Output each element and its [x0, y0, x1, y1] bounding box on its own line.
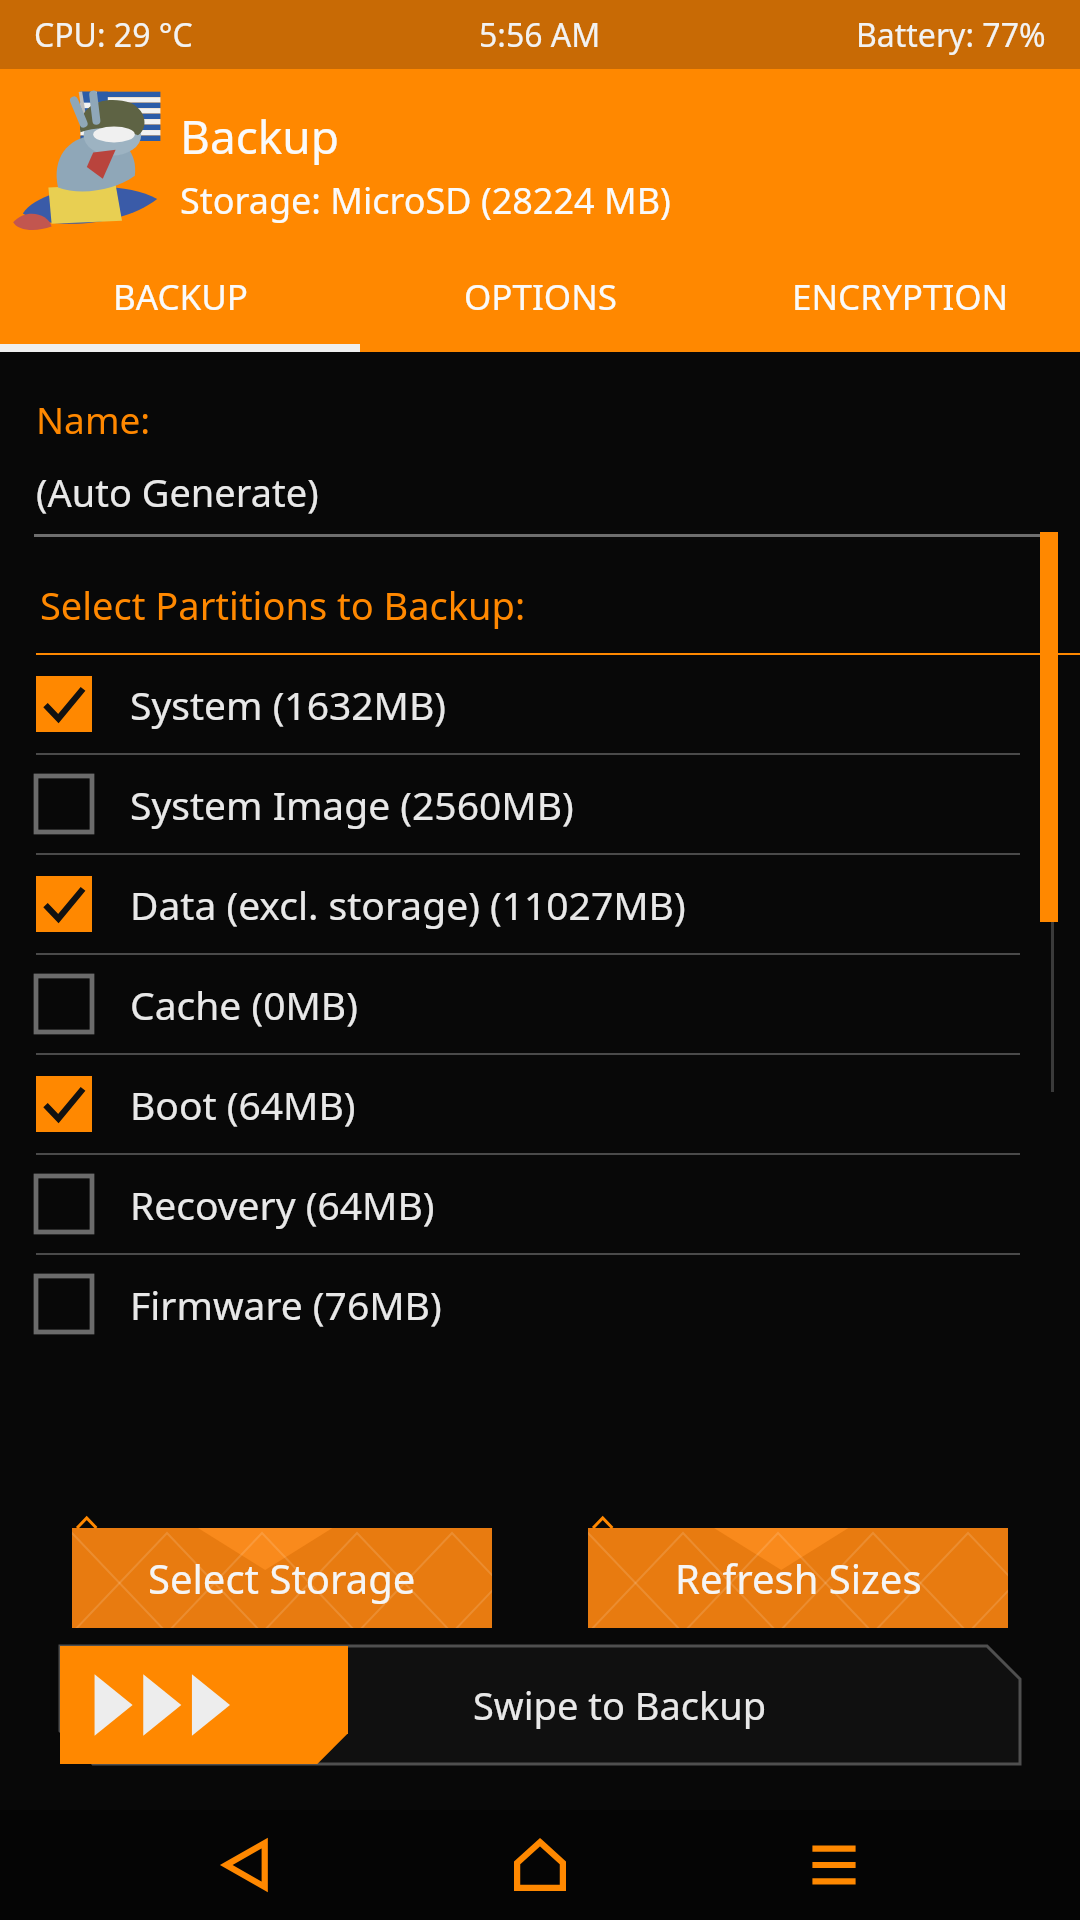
staticText: Cache (0MB) [130, 978, 358, 1031]
staticText: Select Storage [148, 1551, 416, 1605]
button[interactable]: BACKUP [0, 256, 360, 352]
button[interactable]: Menu [786, 1817, 882, 1913]
staticText: Boot (64MB) [130, 1078, 356, 1131]
button[interactable]: Recovery (64MB) [36, 1155, 1020, 1253]
staticText: OPTIONS [464, 273, 617, 321]
button[interactable]: System Image (2560MB) [36, 755, 1020, 853]
button[interactable]: Boot (64MB) [36, 1055, 1020, 1153]
staticText: Name: [36, 394, 151, 444]
button[interactable]: Refresh Sizes [588, 1528, 1008, 1628]
button[interactable]: Data (excl. storage) (11027MB) [36, 855, 1020, 953]
button[interactable]: Home [492, 1817, 588, 1913]
staticText: ENCRYPTION [792, 273, 1009, 321]
button[interactable]: Select Storage [72, 1528, 492, 1628]
staticText: Data (excl. storage) (11027MB) [130, 878, 686, 931]
staticText: Recovery (64MB) [130, 1178, 435, 1231]
staticText: System (1632MB) [130, 678, 447, 731]
button[interactable]: System (1632MB) [36, 655, 1020, 753]
button[interactable]: Cache (0MB) [36, 955, 1020, 1053]
staticText: (Auto Generate) [36, 466, 319, 518]
staticText: Select Partitions to Backup: [40, 579, 526, 631]
button[interactable]: Swipe to Backup [60, 1646, 1020, 1764]
button[interactable]: Back [198, 1817, 294, 1913]
staticText: Storage: MicroSD (28224 MB) [180, 176, 671, 225]
staticText: Swipe to Backup [473, 1679, 767, 1731]
staticText: 5:56 AM [479, 13, 601, 57]
staticText: CPU: 29 °C [34, 13, 193, 57]
staticText: System Image (2560MB) [130, 778, 574, 831]
staticText: Refresh Sizes [675, 1551, 922, 1605]
staticText: BACKUP [113, 273, 248, 321]
button[interactable]: OPTIONS [360, 256, 720, 352]
button[interactable]: ENCRYPTION [720, 256, 1080, 352]
staticText: Backup [180, 105, 340, 168]
staticText: Battery: 77% [856, 13, 1046, 57]
staticText: Firmware (76MB) [130, 1278, 442, 1331]
button[interactable]: Firmware (76MB) [36, 1255, 1020, 1353]
